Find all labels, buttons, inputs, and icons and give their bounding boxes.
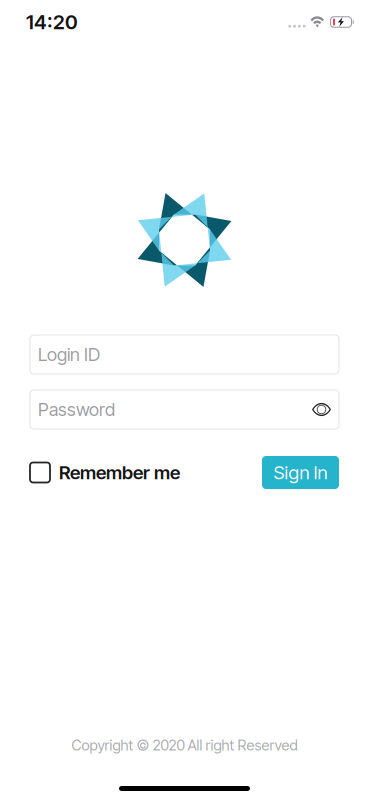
staticText: Remember me [59, 461, 180, 484]
button[interactable]: Password [30, 390, 339, 429]
button[interactable]: Sign In [262, 456, 339, 489]
staticText: Login ID [38, 344, 100, 365]
button[interactable]: Remember me [30, 456, 180, 489]
staticText: Sign In [273, 461, 327, 484]
staticText: Password [38, 399, 115, 420]
staticText: Copyright © 2020 All right Reserved [71, 736, 297, 754]
staticText: 14:20 [26, 10, 78, 34]
button[interactable]: Login ID [30, 335, 339, 374]
